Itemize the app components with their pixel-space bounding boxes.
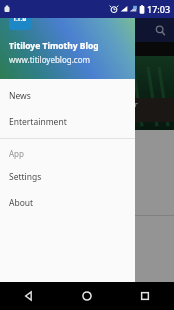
staticText: hared — [2, 198, 23, 208]
button[interactable]: Recent apps — [116, 282, 174, 310]
button[interactable]: Back — [0, 282, 58, 310]
button[interactable]: About — [0, 190, 135, 216]
staticText: he Kogi — [2, 174, 29, 184]
staticText: App — [9, 148, 24, 159]
button[interactable]: Search — [150, 20, 170, 40]
staticText: T.T.B — [13, 15, 27, 23]
button[interactable]: Popup window — [136, 288, 174, 308]
staticText: News — [9, 90, 31, 102]
staticText: Settings — [9, 171, 42, 183]
button[interactable]: Settings — [0, 164, 135, 190]
button[interactable]: Home — [58, 282, 116, 310]
button[interactable]: Entertainment — [0, 109, 135, 135]
staticText: Entertainment — [9, 116, 67, 128]
staticText: porter, — [2, 138, 26, 148]
staticText: rmor a — [121, 100, 138, 118]
button[interactable]: News — [0, 83, 135, 109]
staticText: 17:03 — [147, 3, 171, 15]
staticText: About — [9, 197, 34, 209]
staticText: Titiloye Timothy Blog — [9, 40, 99, 52]
staticText: www.titiloyeblog.com — [9, 54, 90, 65]
